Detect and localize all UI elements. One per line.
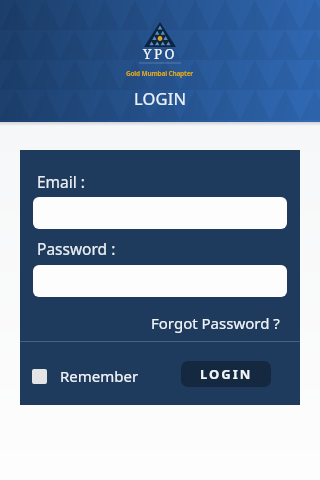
staticText: Gold Mumbai Chapter — [126, 69, 194, 78]
staticText: Remember — [60, 366, 139, 386]
button[interactable]: Forgot Password ? — [151, 313, 280, 333]
staticText: YPO — [143, 45, 178, 63]
button[interactable]: LOGIN — [181, 361, 271, 387]
button[interactable] — [33, 197, 287, 229]
staticText: LOGIN — [134, 87, 187, 109]
staticText: LOGIN — [200, 365, 253, 383]
staticText: Email : — [37, 171, 85, 192]
button[interactable]: Remember — [32, 366, 139, 386]
staticText: Password : — [37, 238, 116, 259]
button[interactable] — [33, 265, 287, 297]
staticText: Forgot Password ? — [151, 313, 280, 333]
